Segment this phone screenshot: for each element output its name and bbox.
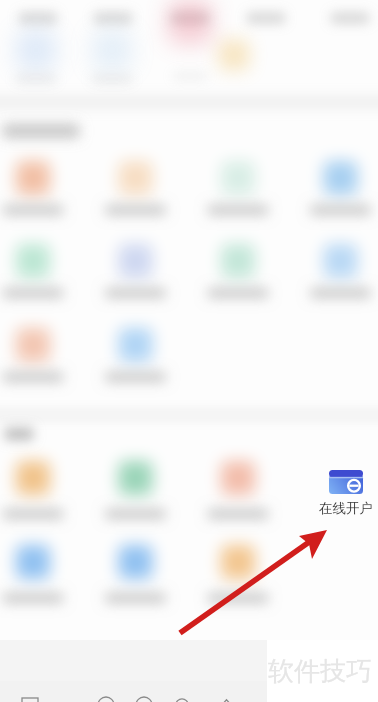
button[interactable]: Back xyxy=(136,697,152,702)
button[interactable]: Recents xyxy=(22,698,38,702)
button[interactable]: 在线开户 xyxy=(329,470,363,494)
button[interactable]: 在线开户 xyxy=(317,470,374,517)
button[interactable]: Home xyxy=(98,697,114,702)
staticText: 软件技巧 xyxy=(268,655,372,688)
button[interactable]: Expand xyxy=(219,697,234,702)
staticText: 在线开户 xyxy=(319,500,373,517)
button[interactable]: Search xyxy=(174,697,190,702)
